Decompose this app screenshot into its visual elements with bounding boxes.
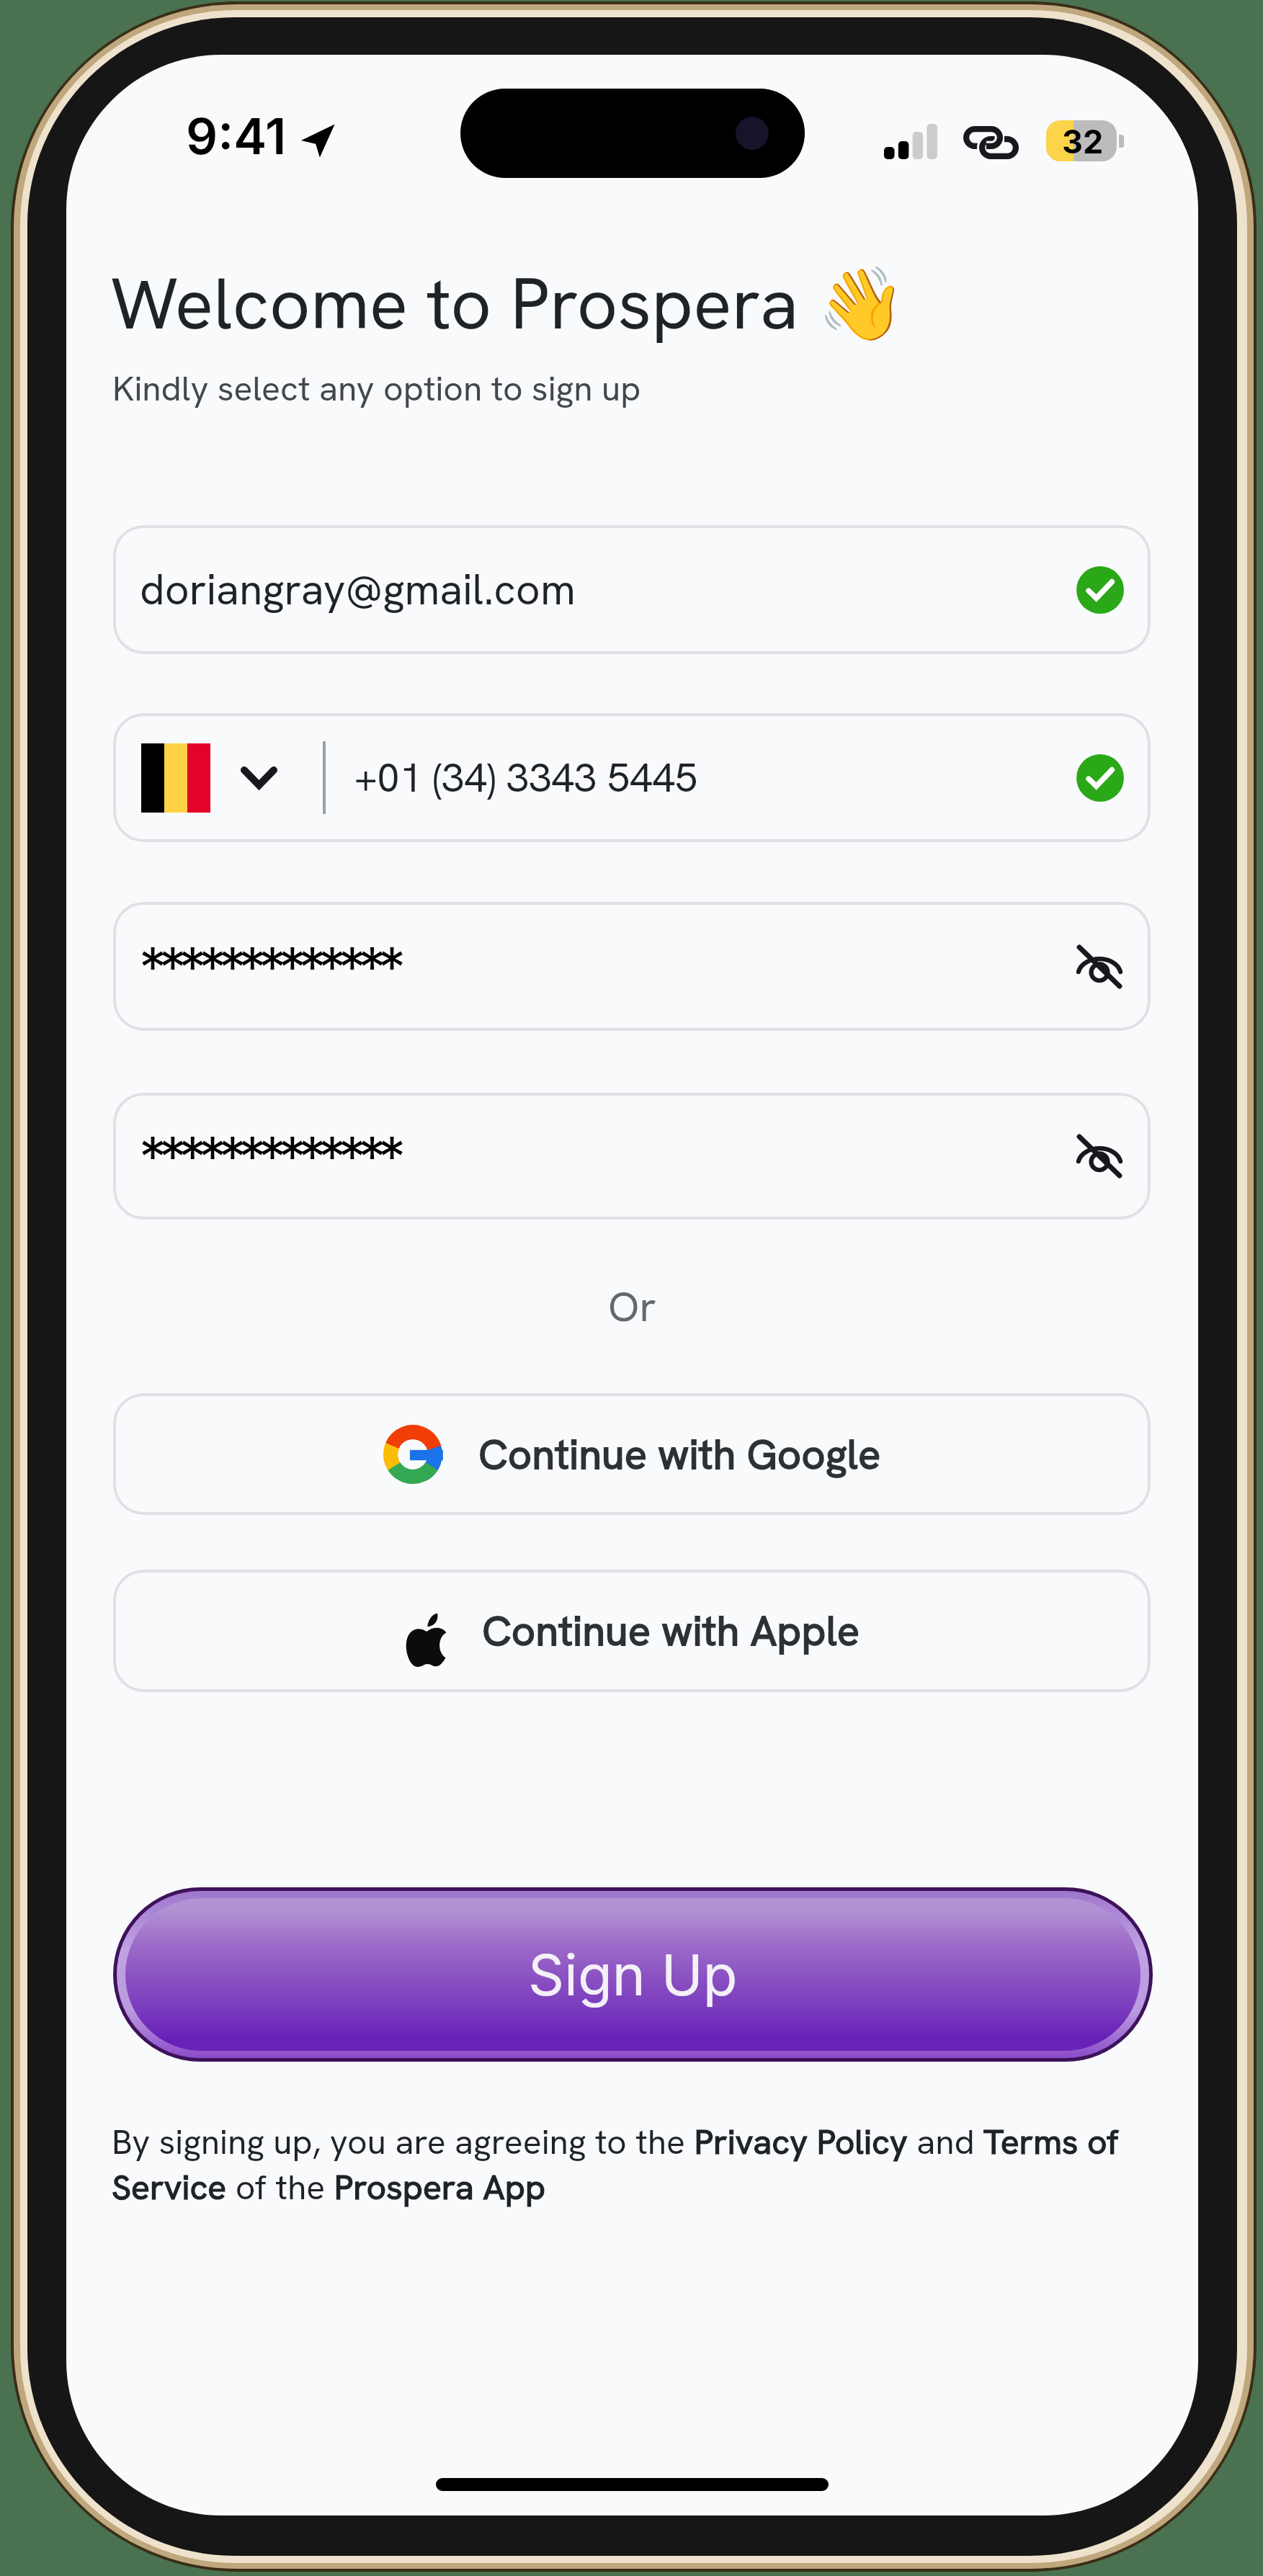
staticText: ************* [139,934,1077,1000]
staticText: By signing up, you are agreeing to the P… [112,2119,1164,2210]
staticText: Or [608,1279,656,1334]
button[interactable]: +01 (34) 3343 5445 [113,713,1151,842]
button[interactable]: Show password [1077,1135,1122,1178]
staticText: 9:41 [186,106,287,166]
staticText: Continue with Google [478,1427,881,1482]
other: Link [963,126,1019,159]
staticText: Kindly select any option to sign up [112,366,641,411]
button[interactable]: Sign Up [113,1887,1153,2062]
button[interactable]: ************* [113,1093,1151,1220]
button[interactable]: Continue with Google [113,1393,1151,1515]
staticText: 32 [1062,122,1104,161]
staticText: Sign Up [528,1941,738,2008]
staticText: doriangray@gmail.com [140,562,1076,617]
staticText: Welcome to Prospera 👋 [110,257,906,350]
staticText: Continue with Apple [482,1604,860,1658]
button[interactable]: ************* [113,902,1151,1031]
button[interactable]: Show password [1077,945,1122,988]
button[interactable]: doriangray@gmail.com [113,525,1151,654]
staticText: +01 (34) 3343 5445 [354,751,1076,804]
button[interactable]: Continue with Apple [113,1570,1151,1692]
staticText: ************* [139,1123,1077,1189]
